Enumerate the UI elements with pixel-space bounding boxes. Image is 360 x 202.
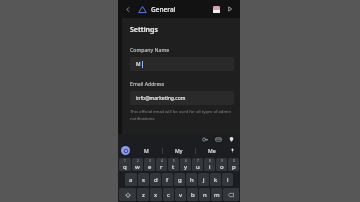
button[interactable]: 2 [132, 158, 143, 171]
button[interactable]: Password [201, 135, 209, 143]
button[interactable]: Location [227, 135, 235, 143]
staticText: 1 [124, 159, 126, 163]
staticText: This official email will be used for all… [130, 109, 231, 115]
button[interactable]: 6 [180, 158, 191, 171]
button[interactable]: Google [121, 146, 130, 155]
staticText: j [203, 176, 205, 184]
button[interactable]: 3 [144, 158, 155, 171]
button[interactable]: 1 [119, 158, 131, 171]
staticText: Company Name [130, 46, 170, 53]
button[interactable]: a [125, 173, 137, 186]
button[interactable]: s [138, 173, 149, 186]
staticText: 5 [173, 159, 175, 163]
button[interactable]: 4 [156, 158, 167, 171]
button[interactable]: 0 [228, 158, 239, 171]
button[interactable]: x [150, 188, 162, 201]
button[interactable]: d [150, 173, 161, 186]
button[interactable]: Backspace [223, 188, 239, 201]
button[interactable]: 7 [192, 158, 203, 171]
button[interactable]: App logo [136, 3, 148, 15]
staticText: 3 [149, 159, 151, 163]
staticText: c [167, 191, 170, 199]
button[interactable]: M [130, 57, 234, 71]
staticText: 2 [137, 159, 139, 163]
staticText: notifications. [130, 116, 156, 122]
staticText: a [129, 176, 133, 184]
staticText: x [154, 191, 158, 199]
button[interactable]: c [163, 188, 174, 201]
button[interactable]: Me [196, 144, 228, 157]
staticText: 7 [197, 159, 199, 163]
staticText: s [142, 176, 145, 184]
staticText: info@marketing.com [136, 95, 186, 102]
button[interactable]: Voice input [228, 146, 237, 155]
staticText: f [166, 176, 169, 184]
button[interactable]: Account [210, 3, 222, 15]
button[interactable]: M [130, 144, 162, 157]
button[interactable]: b [187, 188, 198, 201]
staticText: r [160, 163, 163, 171]
button[interactable]: Back [122, 3, 134, 15]
staticText: 4 [161, 159, 163, 163]
button[interactable]: 8 [204, 158, 215, 171]
staticText: i [209, 163, 211, 171]
staticText: Me [208, 147, 216, 154]
staticText: t [172, 163, 175, 171]
staticText: 8 [209, 159, 211, 163]
staticText: My [175, 147, 183, 154]
staticText: z [142, 191, 145, 199]
button[interactable]: l [222, 173, 233, 186]
staticText: w [135, 163, 140, 171]
button[interactable]: h [186, 173, 197, 186]
staticText: e [148, 163, 152, 171]
staticText: 0 [233, 159, 235, 163]
button[interactable]: Payment [214, 135, 222, 143]
button[interactable]: f [162, 173, 173, 186]
staticText: v [179, 191, 183, 199]
staticText: q [123, 163, 127, 171]
button[interactable]: My [163, 144, 195, 157]
button[interactable]: More [224, 3, 236, 15]
button[interactable]: 9 [216, 158, 227, 171]
button[interactable]: v [175, 188, 186, 201]
staticText: n [203, 191, 207, 199]
button[interactable]: Shift [119, 188, 136, 201]
staticText: o [220, 163, 224, 171]
staticText: p [232, 163, 236, 171]
button[interactable]: 5 [168, 158, 179, 171]
staticText: l [227, 176, 229, 184]
button[interactable]: z [137, 188, 149, 201]
button[interactable]: info@marketing.com [130, 91, 234, 105]
staticText: General [151, 5, 176, 14]
staticText: M [136, 61, 141, 68]
button[interactable]: j [198, 173, 209, 186]
button[interactable]: k [210, 173, 221, 186]
button[interactable]: m [211, 188, 222, 201]
staticText: h [190, 176, 194, 184]
staticText: M [144, 147, 149, 154]
staticText: 6 [185, 159, 187, 163]
staticText: k [214, 176, 218, 184]
button[interactable]: g [174, 173, 185, 186]
staticText: Settings [130, 25, 158, 35]
staticText: y [184, 163, 188, 171]
staticText: u [196, 163, 200, 171]
staticText: b [191, 191, 195, 199]
staticText: m [214, 191, 220, 199]
button[interactable]: n [199, 188, 210, 201]
staticText: d [154, 176, 158, 184]
staticText: Email Address [130, 80, 165, 87]
staticText: g [178, 176, 182, 184]
staticText: 9 [221, 159, 223, 163]
